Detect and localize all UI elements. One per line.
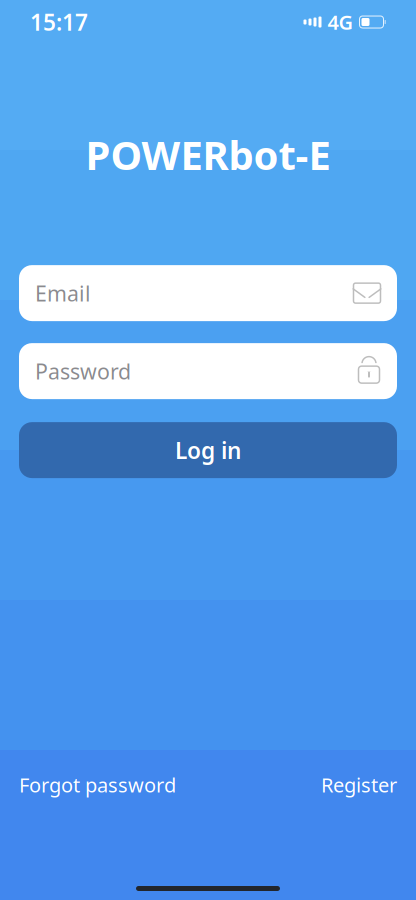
staticText: 15:17 (30, 7, 88, 37)
staticText: Forgot password (19, 771, 176, 798)
staticText: POWERbot-E (85, 128, 330, 181)
staticText: Password (35, 357, 131, 385)
button[interactable]: Email (19, 265, 397, 321)
button[interactable]: Password (19, 343, 397, 399)
staticText: Register (321, 771, 397, 798)
button[interactable]: Register (321, 763, 397, 806)
button[interactable]: Forgot password (19, 763, 176, 806)
staticText: 4G (327, 9, 353, 35)
staticText: Email (35, 279, 91, 307)
button[interactable]: Log in (19, 422, 397, 478)
staticText: Log in (175, 435, 241, 465)
